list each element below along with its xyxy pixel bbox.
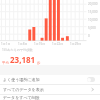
staticText: 歩: [37, 61, 41, 65]
staticText: 1月29日: [70, 42, 82, 46]
staticText: 15,000: [88, 10, 98, 14]
staticText: すべてのデータを表示: [3, 87, 44, 92]
staticText: 1月22日: [52, 42, 64, 46]
staticText: 23,181: [10, 54, 36, 65]
staticText: データをすべて削除: [3, 95, 40, 100]
staticText: 1月1日: [1, 42, 11, 46]
staticText: 1日あたりの平均歩数: [2, 48, 33, 52]
staticText: 平均: [2, 61, 9, 65]
staticText: 20,000: [88, 2, 98, 6]
staticText: 5,000: [88, 26, 96, 30]
staticText: 10,000: [88, 18, 98, 22]
other: Open: [90, 87, 95, 92]
button[interactable]: データをすべて削除: [0, 95, 100, 100]
button[interactable]: よく使う場所に追加: [0, 75, 100, 84]
staticText: よく使う場所に追加: [3, 77, 40, 82]
other: Toggle: [87, 77, 95, 82]
staticText: 1月8日: [18, 42, 28, 46]
staticText: 0: [88, 34, 90, 38]
staticText: 1月15日: [34, 42, 46, 46]
button[interactable]: すべてのデータを表示: [0, 85, 100, 94]
